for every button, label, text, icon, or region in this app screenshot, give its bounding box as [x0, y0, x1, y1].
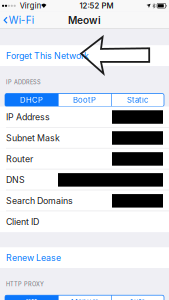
button[interactable]: DNS [0, 169, 169, 190]
button[interactable]: Subnet Mask [0, 127, 169, 148]
staticText: DHCP [20, 95, 43, 105]
button[interactable]: Wi-Fi [0, 12, 37, 29]
staticText: Static [127, 95, 148, 105]
staticText: Wi-Fi [9, 14, 34, 26]
staticText: IP Address [6, 112, 50, 122]
staticText: Renew Lease [6, 253, 61, 263]
button[interactable]: BootP [58, 93, 111, 106]
staticText: Client ID [6, 217, 39, 227]
staticText: Router [6, 154, 33, 164]
staticText: Off [25, 297, 37, 300]
staticText: Subnet Mask [6, 133, 60, 143]
button[interactable]: Renew Lease [0, 247, 169, 268]
staticText: 12:52 PM [79, 1, 113, 10]
button[interactable]: Manual [58, 295, 111, 300]
staticText: HTTP PROXY [6, 281, 44, 287]
staticText: Meowi [68, 14, 101, 26]
staticText: Search Domains [6, 196, 73, 206]
button[interactable]: Static [111, 93, 164, 106]
staticText: Forget This Network [6, 50, 89, 61]
staticText: BootP [73, 95, 96, 105]
button[interactable]: Client ID [0, 211, 169, 232]
button[interactable]: Search Domains [0, 190, 169, 211]
staticText: Manual [71, 297, 98, 300]
staticText: Auto [129, 297, 146, 300]
button[interactable]: DHCP [5, 93, 58, 106]
button[interactable]: Router [0, 148, 169, 169]
button[interactable]: Forget This Network [0, 45, 169, 66]
button[interactable]: IP Address [0, 106, 169, 127]
staticText: Virgin [16, 1, 41, 10]
button[interactable]: Auto [111, 295, 164, 300]
staticText: IP ADDRESS [6, 79, 41, 85]
button[interactable]: Off [5, 295, 58, 300]
staticText: DNS [6, 175, 25, 185]
